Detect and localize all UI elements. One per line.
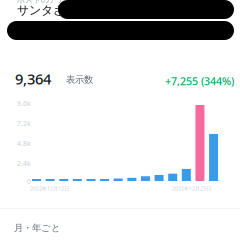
button[interactable]: 月・年ごと	[14, 220, 74, 236]
staticText: 9,364	[15, 69, 51, 88]
staticText: 表示数	[66, 74, 93, 85]
staticText: 2022年12月25日	[172, 185, 211, 192]
staticText: 月・年ごと	[14, 222, 61, 234]
staticText: +7,255 (344%)	[165, 74, 234, 88]
staticText: 2022年12月12日	[30, 185, 69, 192]
staticText: 9.6k	[17, 99, 31, 108]
staticText: 7.2k	[17, 119, 31, 128]
staticText: サンタさ	[17, 3, 65, 18]
staticText: 0	[27, 177, 31, 186]
staticText: ポストのアナリティクス	[17, 0, 105, 5]
staticText: 2.4k	[17, 159, 31, 168]
staticText: 4.8k	[17, 139, 31, 148]
